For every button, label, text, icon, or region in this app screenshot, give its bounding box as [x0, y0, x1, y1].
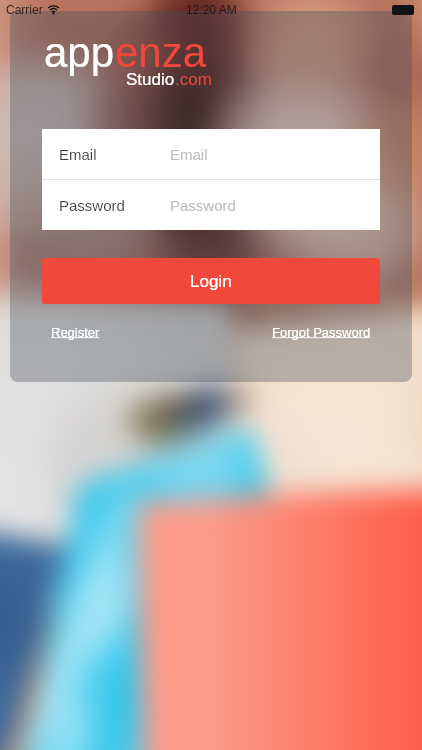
staticText: app [44, 29, 115, 76]
staticText: Email [59, 146, 97, 163]
staticText: Register [51, 325, 100, 340]
staticText: .com [175, 70, 212, 89]
button[interactable]: Email [42, 129, 380, 179]
button[interactable]: Register [51, 325, 100, 340]
staticText: Forgot Password [272, 325, 371, 340]
button[interactable]: Forgot Password [272, 325, 371, 340]
button[interactable]: Login [42, 258, 380, 304]
staticText: enza [115, 29, 207, 76]
button[interactable]: Password [42, 180, 380, 230]
staticText: 12:20 AM [186, 3, 237, 16]
staticText: Login [190, 272, 232, 291]
staticText: Email [170, 146, 208, 163]
staticText: Password [170, 197, 236, 214]
staticText: Carrier [6, 3, 43, 16]
staticText: Password [59, 197, 125, 214]
staticText: Studio [126, 70, 175, 89]
